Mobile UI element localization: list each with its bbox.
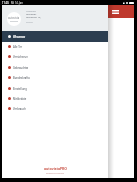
staticText: Duisbg (26, 21, 33, 24)
staticText: powered by autovista (46, 172, 65, 174)
staticText: Bundeskrafta (13, 76, 30, 80)
staticText: Alle Ter (13, 45, 23, 49)
button[interactable]: Open navigation drawer (108, 5, 122, 18)
staticText: Verbrauch (13, 107, 26, 111)
staticText: Musterstr. 10, (26, 16, 41, 19)
button[interactable]: Bundeskrafta (2, 72, 108, 83)
staticText: Gebrauchtw (13, 66, 29, 70)
staticText: 11:25 (2, 1, 9, 5)
staticText: Mi 14. Jan (11, 1, 23, 5)
staticText: Autohaus (26, 10, 36, 13)
button[interactable]: Einstellung (2, 83, 108, 94)
button[interactable]: Versicherun (2, 51, 108, 62)
staticText: Musterm. (26, 13, 37, 16)
button[interactable]: Wissensw (2, 31, 108, 42)
button[interactable]: Gebrauchtw (2, 62, 108, 73)
button[interactable]: Meldedate (2, 93, 108, 104)
staticText: Versicherun (13, 55, 28, 59)
staticText: Meldedate (13, 97, 27, 101)
button[interactable]: Verbrauch (2, 103, 108, 114)
button[interactable]: Alle Ter (2, 41, 108, 52)
staticText: autovistaPRO (44, 166, 67, 171)
staticText: Einstellung (13, 87, 27, 91)
staticText: Wissensw (13, 35, 26, 39)
staticText: autovista (8, 16, 20, 20)
